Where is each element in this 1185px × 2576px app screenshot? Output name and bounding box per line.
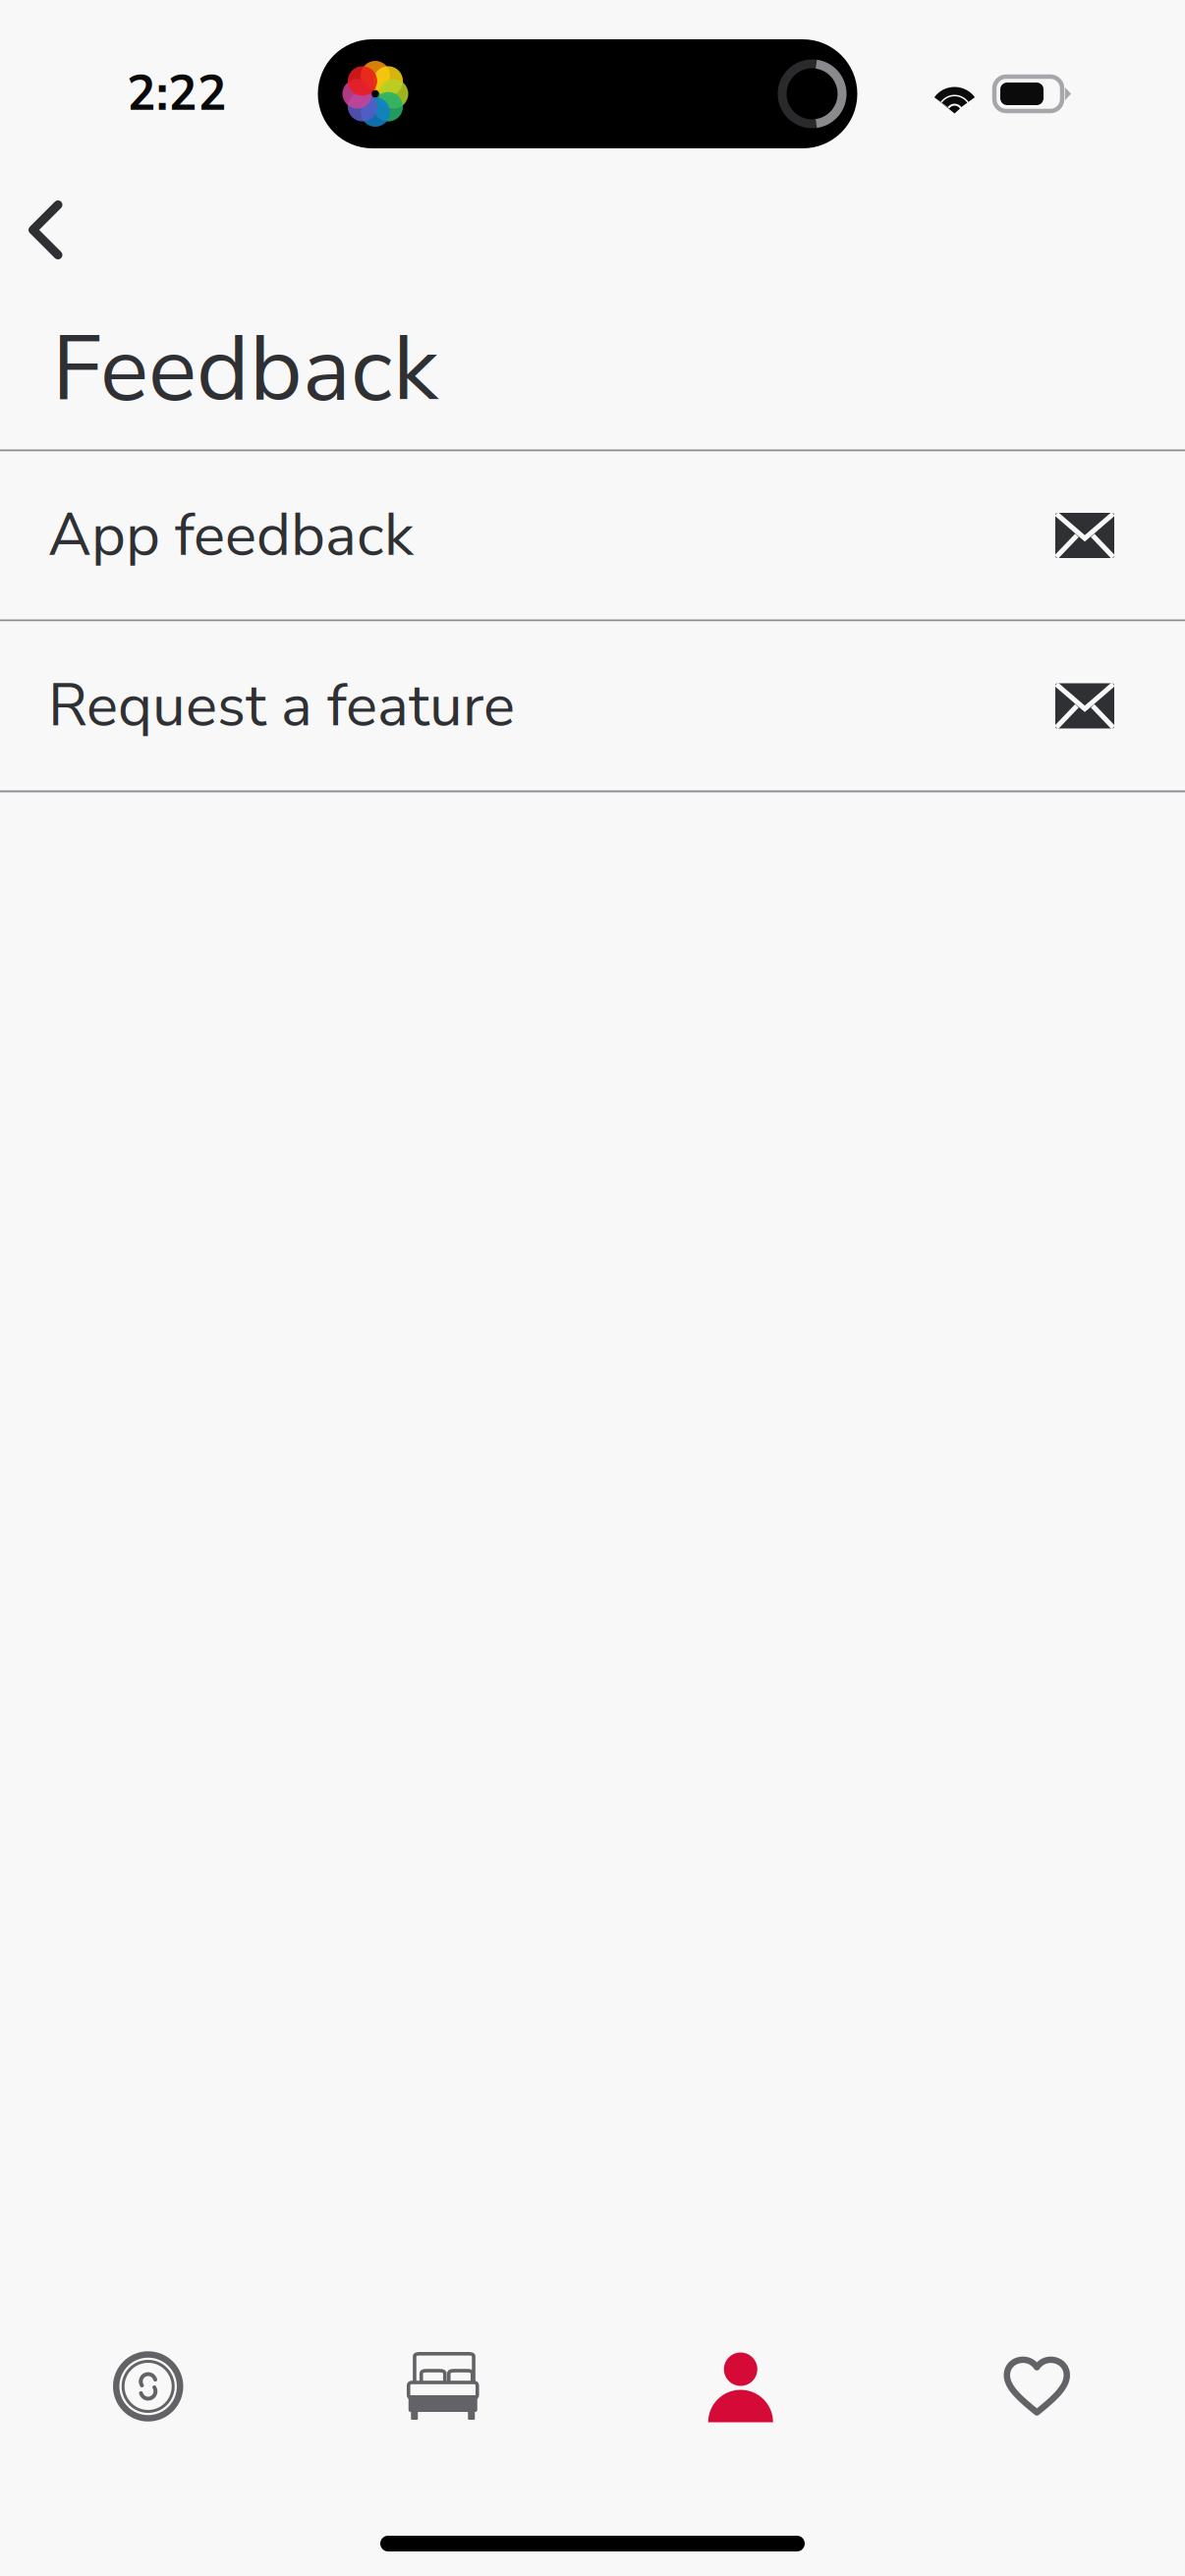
button[interactable]: Bed bbox=[296, 2354, 592, 2427]
staticText: App feedback bbox=[48, 495, 414, 576]
button[interactable]: App feedback bbox=[0, 451, 1185, 619]
button[interactable]: Back bbox=[4, 188, 86, 272]
button[interactable]: Request a feature bbox=[0, 621, 1185, 790]
button[interactable]: Favorites bbox=[889, 2354, 1185, 2427]
button[interactable]: Profile bbox=[592, 2354, 889, 2427]
staticText: Feedback bbox=[52, 308, 438, 432]
button[interactable]: Sleep tracking bbox=[0, 2354, 296, 2427]
staticText: Request a feature bbox=[48, 666, 515, 746]
staticText: 2:22 bbox=[127, 61, 227, 127]
